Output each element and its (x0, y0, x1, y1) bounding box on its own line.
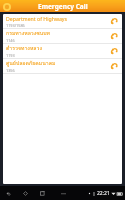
staticText: 1193 (6, 53, 15, 58)
staticText: Emergency Call (38, 2, 88, 11)
button[interactable]: ศูนย์ปลอดภัยคมนาคม (3, 59, 122, 73)
button[interactable]: Status (88, 190, 123, 197)
button[interactable]: Back (3, 188, 14, 199)
staticText: ตำรวจทางหลวง (6, 44, 42, 52)
button[interactable]: Recent apps (37, 188, 48, 199)
button[interactable]: Call กรมทางหลวงชนบท (109, 31, 120, 42)
button[interactable]: Call ศูนย์ปลอดภัยคมนาคม (109, 61, 120, 72)
staticText: 1356 (6, 68, 15, 73)
button[interactable]: ตำรวจทางหลวง (3, 44, 122, 58)
button[interactable]: App icon (2, 2, 11, 11)
button[interactable]: Call Department of Highways (109, 16, 120, 27)
button[interactable]: Menu (58, 188, 68, 198)
button[interactable]: Call ตำรวจทางหลวง (109, 46, 120, 57)
button[interactable]: Department of Highways (3, 14, 122, 28)
staticText: 22:21 (97, 190, 110, 197)
button[interactable]: กรมทางหลวงชนบท (3, 29, 122, 43)
staticText: 1193/1586 (6, 23, 25, 28)
staticText: 1146 (6, 38, 15, 43)
button[interactable]: Home (20, 188, 31, 199)
staticText: ศูนย์ปลอดภัยคมนาคม (6, 59, 56, 67)
staticText: กรมทางหลวงชนบท (6, 29, 51, 37)
staticText: Department of Highways (6, 15, 67, 22)
